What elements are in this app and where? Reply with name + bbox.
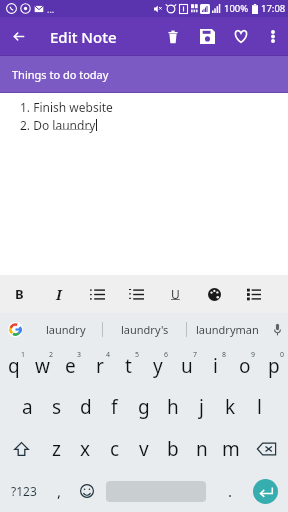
- button[interactable]: o: [230, 345, 259, 386]
- staticText: 1. Finish website: [20, 99, 113, 115]
- staticText: i: [213, 353, 218, 379]
- staticText: 2: [49, 350, 54, 360]
- button[interactable]: Voice input: [267, 313, 288, 345]
- staticText: 7: [193, 350, 198, 360]
- staticText: B: [15, 285, 24, 303]
- button[interactable]: Favorite: [224, 17, 257, 56]
- staticText: f: [111, 394, 118, 420]
- button[interactable]: a: [13, 386, 42, 428]
- staticText: 4: [106, 350, 111, 360]
- button[interactable]: u: [172, 345, 201, 386]
- staticText: n: [196, 436, 208, 462]
- staticText: e: [65, 353, 76, 379]
- staticText: q: [8, 353, 20, 379]
- staticText: laundry: [46, 322, 86, 337]
- button[interactable]: laundryman: [187, 313, 267, 345]
- button[interactable]: .: [208, 470, 253, 512]
- button[interactable]: Italic: [39, 275, 78, 313]
- button[interactable]: Google: [0, 313, 30, 345]
- button[interactable]: y: [143, 345, 172, 386]
- button[interactable]: laundry: [30, 313, 102, 345]
- button[interactable]: Numbered list: [117, 275, 156, 313]
- staticText: s: [52, 394, 62, 420]
- staticText: 6: [164, 350, 169, 360]
- staticText: 5: [135, 350, 140, 360]
- staticText: w: [35, 353, 50, 379]
- staticText: 100%: [224, 2, 249, 15]
- staticText: j: [199, 394, 204, 420]
- button[interactable]: r: [85, 345, 114, 386]
- staticText: k: [225, 394, 236, 420]
- staticText: r: [96, 353, 104, 379]
- staticText: Edit Note: [50, 27, 117, 47]
- button[interactable]: w: [28, 345, 56, 386]
- button[interactable]: n: [187, 428, 216, 470]
- staticText: c: [110, 436, 120, 462]
- button[interactable]: Emoji: [71, 470, 103, 512]
- staticText: 1: [21, 350, 26, 360]
- button[interactable]: More options: [257, 17, 288, 56]
- button[interactable]: laundry's: [103, 313, 186, 345]
- button[interactable]: v: [129, 428, 158, 470]
- button[interactable]: x: [71, 428, 100, 470]
- staticText: d: [80, 394, 92, 420]
- button[interactable]: b: [158, 428, 187, 470]
- button[interactable]: e: [56, 345, 85, 386]
- staticText: x: [80, 436, 91, 462]
- button[interactable]: Back: [0, 17, 38, 56]
- button[interactable]: d: [71, 386, 100, 428]
- button[interactable]: ,: [47, 470, 71, 512]
- staticText: p: [268, 353, 280, 379]
- button[interactable]: l: [245, 386, 274, 428]
- staticText: .: [228, 481, 233, 501]
- button[interactable]: g: [129, 386, 158, 428]
- button[interactable]: Underline: [156, 275, 195, 313]
- staticText: l: [257, 394, 262, 420]
- button[interactable]: p: [259, 345, 288, 386]
- button[interactable]: j: [187, 386, 216, 428]
- staticText: y: [153, 353, 163, 379]
- staticText: z: [52, 436, 61, 462]
- button[interactable]: Bold: [0, 275, 39, 313]
- button[interactable]: Things to do today: [0, 56, 288, 93]
- staticText: 2. Do laundry: [20, 117, 96, 133]
- button[interactable]: Bulleted list: [78, 275, 117, 313]
- button[interactable]: Delete: [156, 17, 190, 56]
- staticText: Things to do today: [12, 67, 109, 82]
- staticText: a: [22, 394, 33, 420]
- button[interactable]: Enter: [253, 470, 288, 512]
- staticText: I: [56, 285, 62, 304]
- staticText: laundry's: [121, 322, 169, 337]
- button[interactable]: z: [42, 428, 71, 470]
- button[interactable]: Checklist: [234, 275, 273, 313]
- staticText: ?123: [11, 483, 37, 499]
- button[interactable]: ?123: [0, 470, 47, 512]
- button[interactable]: Space: [103, 470, 208, 512]
- button[interactable]: Shift: [0, 428, 42, 470]
- staticText: laundryman: [196, 322, 259, 337]
- staticText: 17:08: [261, 2, 286, 15]
- button[interactable]: m: [216, 428, 245, 470]
- button[interactable]: Text colour: [195, 275, 234, 313]
- staticText: h: [167, 394, 179, 420]
- staticText: v: [139, 436, 149, 462]
- staticText: ,: [57, 481, 62, 501]
- staticText: ...: [47, 3, 55, 15]
- button[interactable]: q: [0, 345, 28, 386]
- staticText: u: [181, 353, 193, 379]
- staticText: 8: [222, 350, 227, 360]
- button[interactable]: f: [100, 386, 129, 428]
- button[interactable]: i: [201, 345, 230, 386]
- staticText: 9: [251, 350, 256, 360]
- button[interactable]: t: [114, 345, 143, 386]
- staticText: 0: [280, 350, 285, 360]
- button[interactable]: Backspace: [245, 428, 288, 470]
- staticText: o: [239, 353, 251, 379]
- staticText: m: [222, 436, 240, 462]
- button[interactable]: c: [100, 428, 129, 470]
- button[interactable]: k: [216, 386, 245, 428]
- button[interactable]: Save: [190, 17, 224, 56]
- button[interactable]: h: [158, 386, 187, 428]
- staticText: g: [138, 394, 150, 420]
- button[interactable]: s: [42, 386, 71, 428]
